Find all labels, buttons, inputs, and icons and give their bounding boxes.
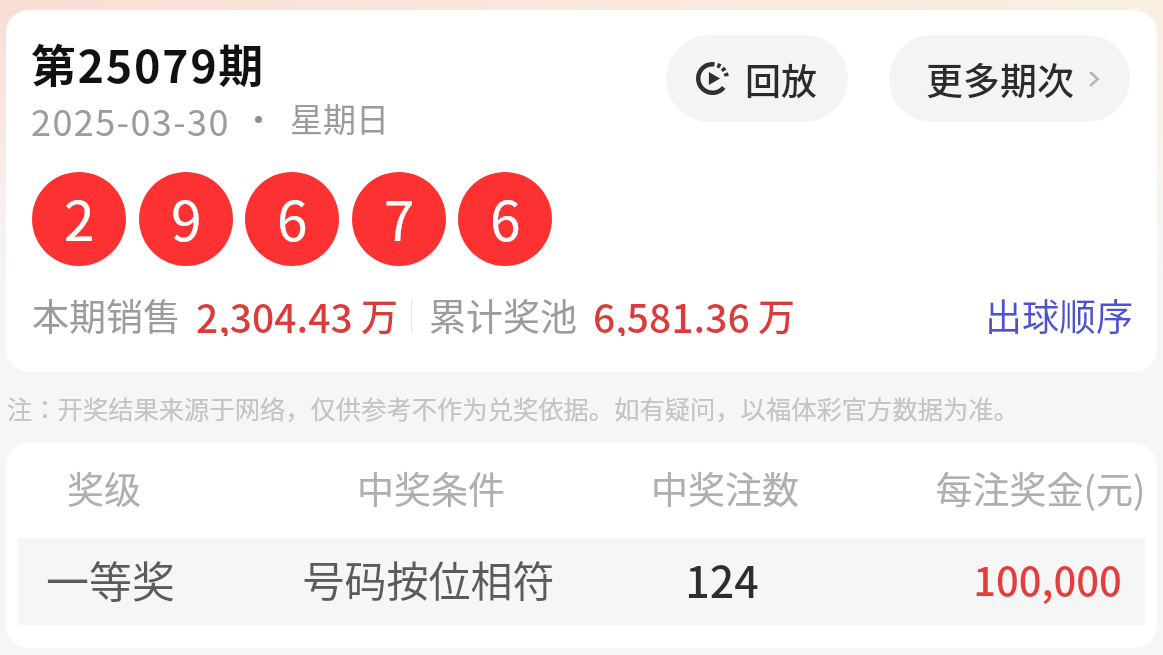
staticText: 2,304.43 [196, 288, 353, 336]
button[interactable]: 更多期次 [889, 35, 1130, 122]
staticText: 100,000 [973, 550, 1122, 608]
staticText: 星期日 [290, 94, 389, 138]
staticText: 号码按位相符 [302, 548, 555, 609]
staticText: 中奖条件 [357, 461, 505, 511]
staticText: 6 [277, 177, 308, 257]
staticText: 累计奖池 [429, 288, 577, 336]
staticText: 2025-03-30 [31, 94, 230, 138]
staticText: 出球顺序 [985, 288, 1133, 336]
button[interactable]: Replay [666, 35, 848, 122]
staticText: 7 [384, 177, 415, 257]
staticText: 一等奖 [46, 548, 175, 610]
staticText: 回放 [745, 53, 818, 105]
staticText: 注：开奖结果来源于网络，仅供参考不作为兑奖依据。如有疑问，以福体彩官方数据为准。 [7, 390, 1019, 427]
staticText: 奖级 [67, 461, 141, 511]
staticText: 本期销售 [32, 288, 180, 336]
staticText: 2 [64, 177, 95, 257]
staticText: 中奖注数 [651, 461, 799, 511]
button[interactable]: 一等奖 [18, 538, 1145, 625]
staticText: 第25079期 [31, 31, 265, 96]
other: More draws [1081, 66, 1107, 92]
staticText: 6 [490, 177, 521, 257]
other: Replay [696, 62, 729, 95]
staticText: 124 [685, 548, 759, 610]
staticText: 6,581.36 [593, 288, 750, 336]
staticText: 万 [758, 288, 795, 336]
staticText: 9 [171, 177, 202, 257]
button[interactable]: 出球顺序 [977, 288, 1141, 336]
staticText: 万 [361, 288, 398, 336]
staticText: 更多期次 [926, 52, 1074, 106]
staticText: 每注奖金(元) [935, 461, 1146, 511]
